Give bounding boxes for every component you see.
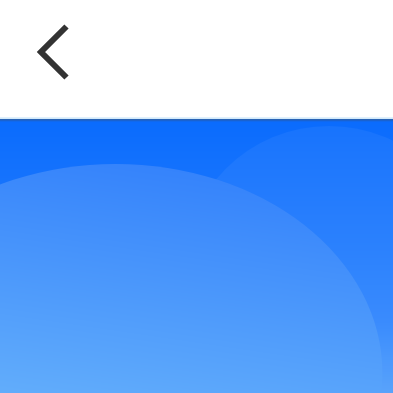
button[interactable]: Back [10, 8, 98, 96]
